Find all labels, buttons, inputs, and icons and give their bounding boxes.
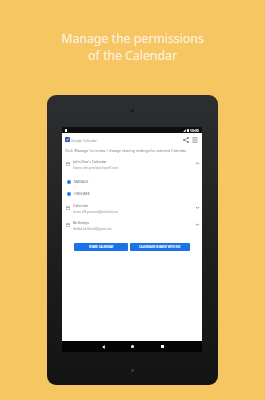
button[interactable]: Back xyxy=(97,341,109,352)
staticText: Calendar xyxy=(73,203,89,208)
button[interactable]: Home xyxy=(126,341,138,352)
staticText: Birthdays xyxy=(73,220,90,225)
button[interactable]: CALENDARS SHARED WITH ME xyxy=(130,243,190,251)
staticText: UNSHARE xyxy=(74,191,90,196)
staticText: SHARE CALENDAR xyxy=(89,245,114,249)
button[interactable]: Recents xyxy=(156,341,168,352)
staticText: Manage the permissions of the Calendar xyxy=(0,30,265,63)
button[interactable]: MANAGE xyxy=(62,177,202,186)
button[interactable]: Share xyxy=(182,136,190,144)
staticText: CALENDARS SHARED WITH ME xyxy=(139,245,181,249)
staticText: bbbbbb-bb.bbb.ddd@gmail.com xyxy=(73,227,112,230)
staticText: John Doe's Calendar xyxy=(73,159,107,164)
button[interactable]: Calendar xyxy=(62,202,202,213)
button[interactable]: John Doe's Calendar xyxy=(62,158,202,169)
button[interactable]: UNSHARE xyxy=(62,189,202,198)
staticText: MANAGE xyxy=(74,179,89,184)
button[interactable]: SHARE CALENDAR xyxy=(74,243,128,251)
staticText: 10:00 xyxy=(190,128,199,133)
button[interactable]: Menu xyxy=(191,136,199,144)
staticText: Owners with generated (login#1.com) xyxy=(73,166,119,169)
staticText: nnnnn-n99.generated@protokoll.com xyxy=(73,210,119,213)
staticText: Google Calendar xyxy=(71,138,97,142)
staticText: Click 'Manage' to review / change sharin… xyxy=(65,148,187,153)
button[interactable]: Birthdays xyxy=(62,219,202,230)
